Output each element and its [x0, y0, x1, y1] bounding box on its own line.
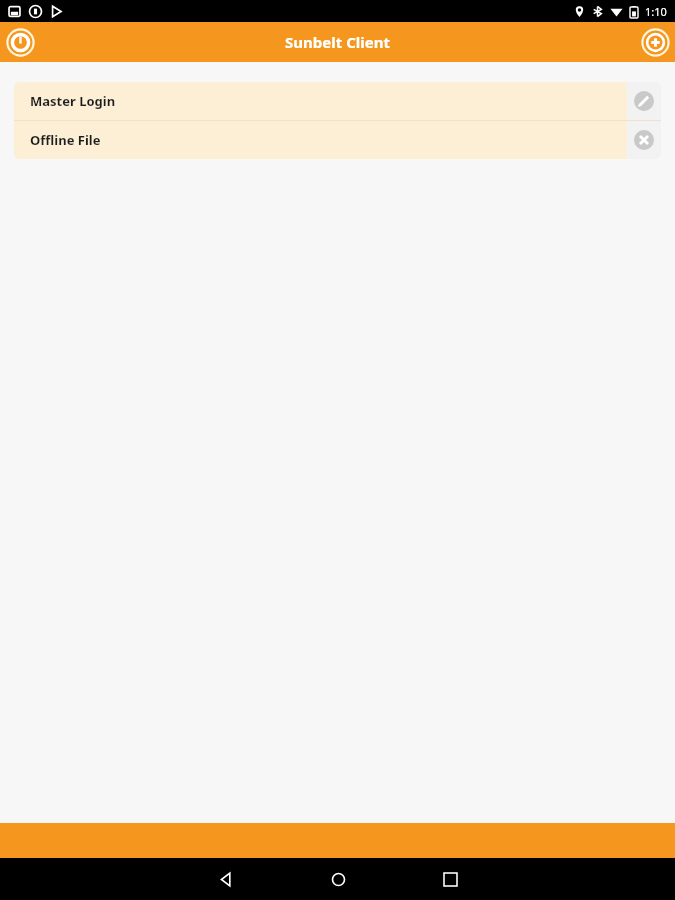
button[interactable]: Edit Master Login	[627, 82, 661, 120]
staticText: Master Login	[30, 92, 116, 110]
button[interactable]: Remove Offline File	[627, 121, 661, 159]
button[interactable]: Back	[170, 858, 282, 900]
button[interactable]: Info	[4, 26, 36, 58]
button[interactable]: Add	[639, 26, 671, 58]
button[interactable]: Master Login	[14, 82, 627, 120]
button[interactable]: Offline File	[14, 121, 627, 159]
staticText: 1:10	[645, 4, 667, 19]
button[interactable]: Home	[282, 858, 394, 900]
button[interactable]: Recent apps	[394, 858, 506, 900]
staticText: Sunbelt Client	[285, 32, 390, 52]
staticText: Offline File	[30, 131, 101, 149]
